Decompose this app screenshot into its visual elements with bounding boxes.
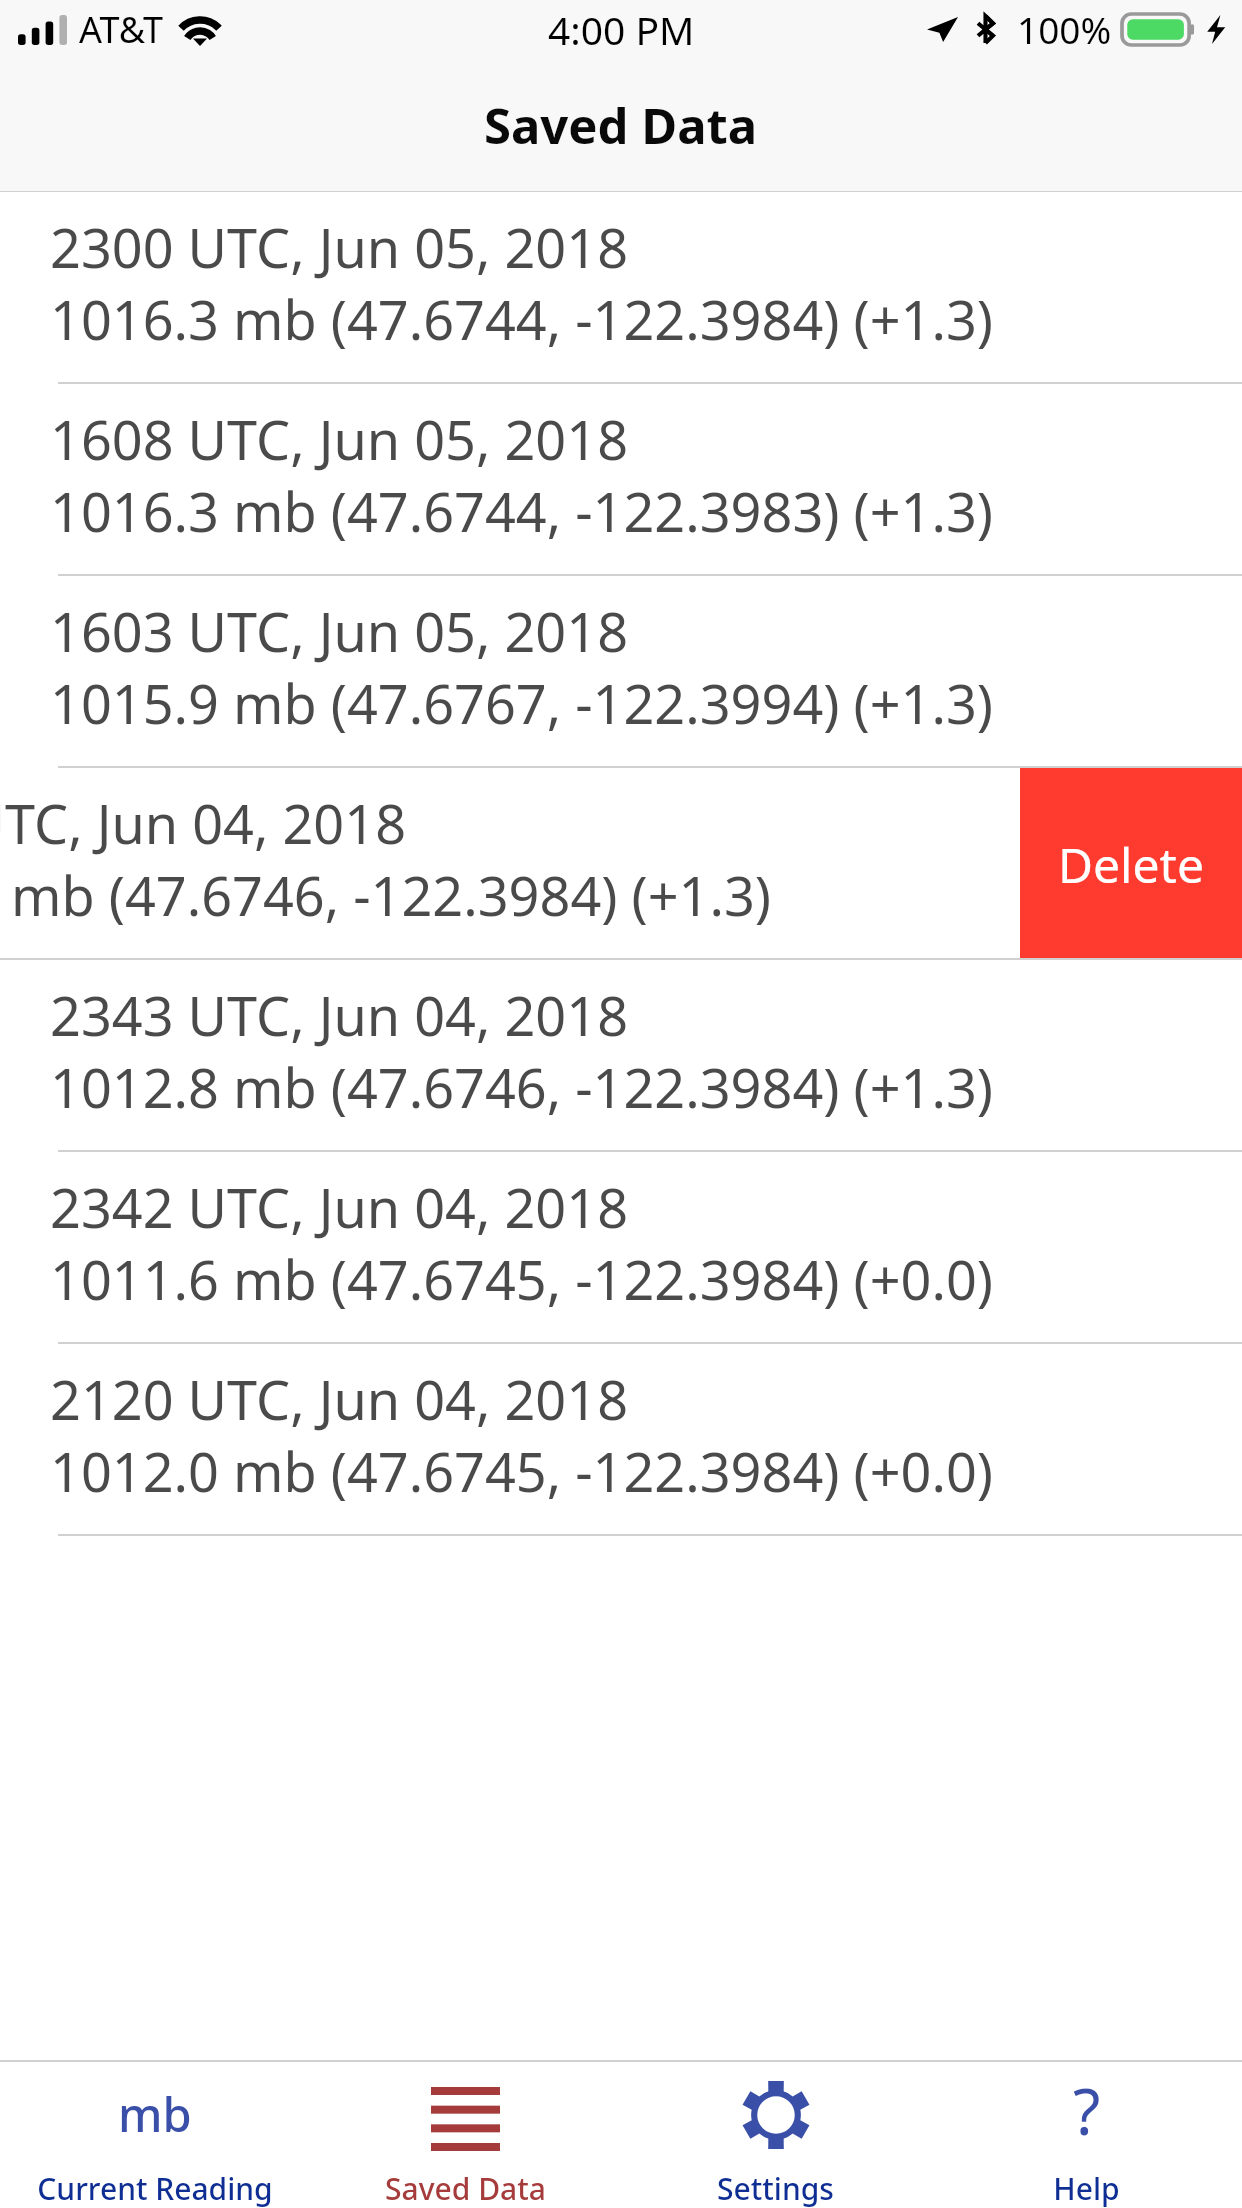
staticText: Settings (717, 2168, 834, 2208)
button[interactable]: 2342 UTC, Jun 04, 2018 (0, 1152, 1242, 1344)
button[interactable]: ? (931, 2062, 1242, 2208)
staticText: 1016.3 mb (47.6744, -122.3983) (+1.3) (50, 474, 994, 548)
button[interactable]: Settings (620, 2062, 931, 2208)
staticText: Delete (1058, 832, 1204, 897)
button[interactable]: 1603 UTC, Jun 05, 2018 (0, 576, 1242, 768)
staticText: 1015.9 mb (47.6767, -122.3994) (+1.3) (50, 666, 994, 740)
button[interactable]: 1608 UTC, Jun 05, 2018 (0, 384, 1242, 576)
staticText: ? (1073, 2068, 1101, 2154)
staticText: 2300 UTC, Jun 05, 2018 (50, 210, 629, 284)
button[interactable]: 2343 UTC, Jun 04, 2018 (0, 960, 1242, 1152)
staticText: 1603 UTC, Jun 05, 2018 (50, 594, 629, 668)
staticText: 2120 UTC, Jun 04, 2018 (50, 1362, 629, 1436)
staticText: 100% (1017, 4, 1112, 54)
staticText: AT&T (79, 5, 163, 54)
staticText: 2342 UTC, Jun 04, 2018 (50, 1170, 629, 1244)
staticText: 1012.0 mb (47.6745, -122.3984) (+0.0) (50, 1434, 994, 1508)
staticText: 1013.1 mb (47.6746, -122.3984) (+1.3) (0, 858, 772, 932)
staticText: Help (1053, 2168, 1120, 2208)
staticText: Saved Data (484, 92, 758, 159)
staticText: 1012.8 mb (47.6746, -122.3984) (+1.3) (50, 1050, 994, 1124)
staticText: 1011.6 mb (47.6745, -122.3984) (+0.0) (50, 1242, 994, 1316)
button[interactable]: 2300 UTC, Jun 05, 2018 (0, 192, 1242, 384)
staticText: 1016.3 mb (47.6744, -122.3984) (+1.3) (50, 282, 994, 356)
staticText: 2343 UTC, Jun 04, 2018 (50, 978, 629, 1052)
button[interactable]: mb (0, 2062, 310, 2208)
button[interactable]: Saved Data (310, 2062, 620, 2208)
button[interactable]: 2120 UTC, Jun 04, 2018 (0, 1344, 1242, 1536)
staticText: 1608 UTC, Jun 05, 2018 (50, 402, 629, 476)
staticText: Saved Data (385, 2168, 546, 2208)
staticText: 0012 UTC, Jun 04, 2018 (0, 786, 407, 860)
staticText: mb (118, 2082, 192, 2146)
staticText: 4:00 PM (548, 3, 695, 56)
staticText: Current Reading (37, 2168, 273, 2208)
button[interactable]: Delete saved reading (1020, 768, 1242, 960)
